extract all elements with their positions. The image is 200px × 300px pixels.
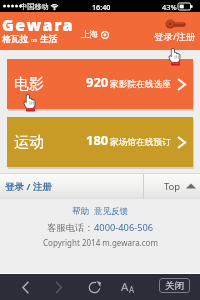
staticText: 格瓦拉 <box>2 34 28 45</box>
staticText: 生活 <box>40 34 58 45</box>
staticText: A <box>121 279 129 295</box>
staticText: A <box>129 284 135 295</box>
staticText: 运动 <box>14 133 44 152</box>
staticText: Top <box>164 180 181 193</box>
button[interactable]: 登录/注册 <box>154 19 196 43</box>
staticText: 16:40 <box>92 2 111 12</box>
staticText: 登录/注册 <box>154 30 196 43</box>
staticText: 电影 <box>14 75 44 94</box>
button[interactable]: Refresh <box>80 275 108 299</box>
button[interactable]: 上海 <box>81 29 109 40</box>
staticText: 关闭 <box>165 280 184 292</box>
staticText: 家场馆在线预订 <box>110 137 171 148</box>
button[interactable]: 4000-406-506 <box>94 221 154 234</box>
button[interactable]: 意见反馈 <box>94 206 128 217</box>
button[interactable]: Top <box>144 173 200 199</box>
staticText: Copyright 2014 m.gewara.com <box>43 237 158 248</box>
staticText: 登录 / 注册 <box>5 180 52 193</box>
staticText: 920 <box>86 73 109 91</box>
button[interactable]: 关闭 <box>159 278 190 293</box>
staticText: 客服电话： <box>47 222 94 234</box>
button[interactable]: Back <box>10 276 40 298</box>
button[interactable]: 电影 <box>7 59 193 109</box>
button[interactable]: Forward <box>43 276 73 298</box>
button[interactable]: Gewara <box>2 15 75 48</box>
staticText: 上海 <box>81 29 98 40</box>
staticText: 180 <box>86 131 109 149</box>
staticText: 家影院在线选座 <box>110 79 171 90</box>
staticText: ∞ <box>30 35 38 45</box>
staticText: 中国移动 <box>20 2 49 11</box>
staticText: 43% <box>162 2 177 12</box>
button[interactable]: 帮助 <box>72 206 89 217</box>
button[interactable]: Text size <box>114 275 142 299</box>
button[interactable]: 运动 <box>7 117 193 167</box>
staticText: Gewara <box>2 14 75 36</box>
button[interactable]: 登录 / 注册 <box>0 173 143 199</box>
